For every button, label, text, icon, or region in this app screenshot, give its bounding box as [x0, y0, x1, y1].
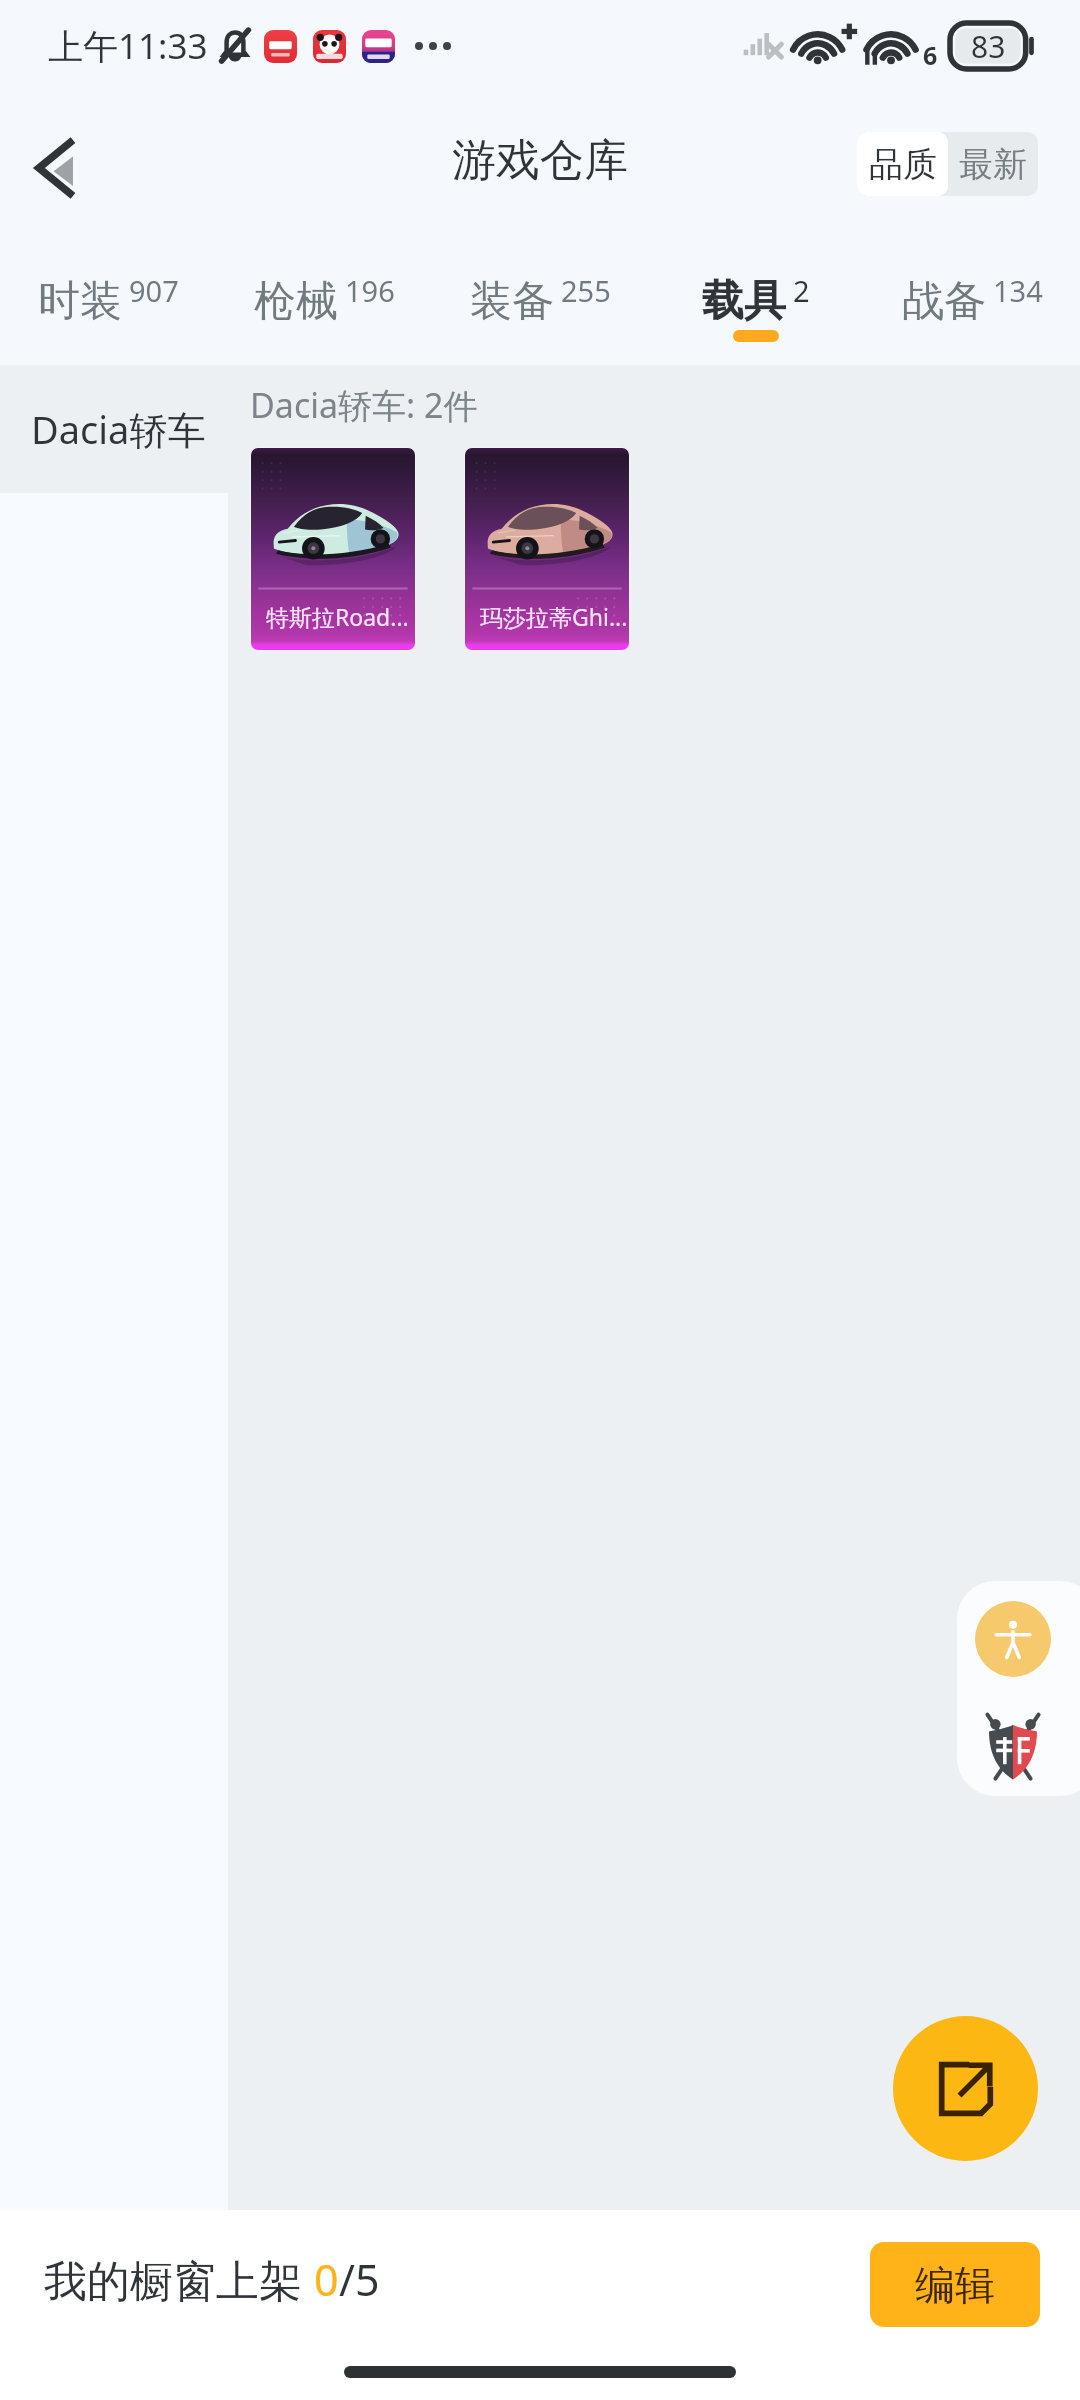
staticText: 907 [129, 271, 179, 310]
button[interactable]: 战备 [864, 229, 1080, 365]
button[interactable]: Game guard [963, 1695, 1063, 1795]
staticText: Dacia轿车 [31, 403, 206, 455]
staticText: 196 [345, 271, 395, 310]
button[interactable]: 玛莎拉蒂Ghi... [465, 448, 629, 650]
staticText: 游戏仓库 [452, 133, 628, 188]
staticText: 战备 [902, 275, 986, 328]
staticText: 玛莎拉蒂Ghi... [480, 601, 628, 632]
staticText: 载具 [702, 275, 786, 328]
staticText: 83 [971, 26, 1006, 67]
staticText: 上午11:33 [48, 22, 208, 70]
button[interactable]: 特斯拉Road... [251, 448, 415, 650]
button[interactable]: Dacia轿车 [0, 365, 228, 493]
button[interactable]: 时装 [0, 229, 216, 365]
button[interactable]: 装备 [432, 229, 648, 365]
button[interactable]: 枪械 [216, 229, 432, 365]
staticText: 0 [314, 2250, 339, 2309]
staticText: 枪械 [254, 275, 338, 328]
button[interactable]: Accessibility [963, 1589, 1063, 1689]
staticText: 6 [923, 38, 938, 72]
staticText: 时装 [38, 275, 122, 328]
button[interactable]: 载具 [648, 229, 864, 365]
staticText: 2 [793, 271, 810, 310]
staticText: 装备 [470, 275, 554, 328]
staticText: 134 [993, 271, 1043, 310]
button[interactable]: 最新 [948, 132, 1038, 196]
staticText: 特斯拉Road... [266, 601, 409, 632]
staticText: 编辑 [915, 2260, 995, 2310]
button[interactable]: 编辑 [870, 2242, 1040, 2327]
staticText: /5 [339, 2250, 380, 2309]
staticText: 品质 [869, 143, 937, 186]
staticText: Dacia轿车: 2件 [250, 382, 478, 428]
staticText: 我的橱窗上架 [44, 2250, 314, 2309]
staticText: 255 [561, 271, 611, 310]
button[interactable]: Back [12, 125, 98, 211]
button[interactable]: 品质 [857, 132, 948, 196]
staticText: 最新 [959, 143, 1027, 186]
button[interactable]: Open external link [893, 2016, 1038, 2161]
